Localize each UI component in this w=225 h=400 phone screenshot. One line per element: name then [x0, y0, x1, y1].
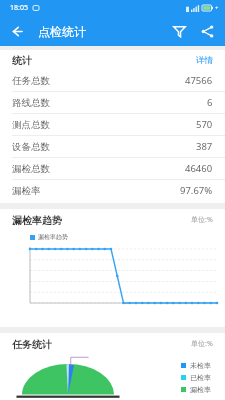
button[interactable]: 漏检总数 [0, 158, 225, 179]
staticText: 未检率 [190, 361, 211, 370]
staticText: 单位:% [191, 339, 213, 349]
staticText: 漏检率 [12, 185, 41, 197]
staticText: 47566 [185, 74, 213, 87]
staticText: 测点总数 [12, 119, 50, 131]
staticText: 387 [196, 140, 213, 153]
staticText: 漏检总数 [12, 163, 50, 175]
button[interactable]: Back [5, 20, 27, 42]
button[interactable]: 漏检率 [0, 180, 225, 201]
staticText: 详情 [196, 55, 213, 66]
staticText: 任务总数 [12, 75, 50, 87]
staticText: 6 [207, 96, 213, 109]
staticText: 46460 [185, 162, 213, 175]
button[interactable]: Filter [165, 17, 193, 45]
staticText: + [215, 4, 219, 12]
staticText: 点检统计 [38, 24, 86, 39]
staticText: 单位:% [191, 215, 213, 225]
button[interactable]: 任务总数 [0, 70, 225, 91]
staticText: 570 [196, 118, 213, 131]
staticText: 设备总数 [12, 141, 50, 153]
staticText: 18:05 [10, 3, 28, 13]
staticText: 路线总数 [12, 97, 50, 109]
button[interactable]: Share [193, 17, 221, 45]
staticText: 已检率 [190, 373, 211, 382]
staticText: 漏检率趋势 [12, 214, 62, 227]
button[interactable]: 测点总数 [0, 114, 225, 135]
staticText: 任务统计 [12, 338, 52, 351]
button[interactable]: 设备总数 [0, 136, 225, 157]
staticText: 漏检率 [190, 385, 211, 394]
staticText: 97.67% [180, 184, 213, 197]
staticText: 统计 [12, 54, 32, 67]
button[interactable]: 统计 [0, 50, 225, 70]
button[interactable]: 路线总数 [0, 92, 225, 113]
staticText: 漏检率趋势 [38, 233, 68, 241]
